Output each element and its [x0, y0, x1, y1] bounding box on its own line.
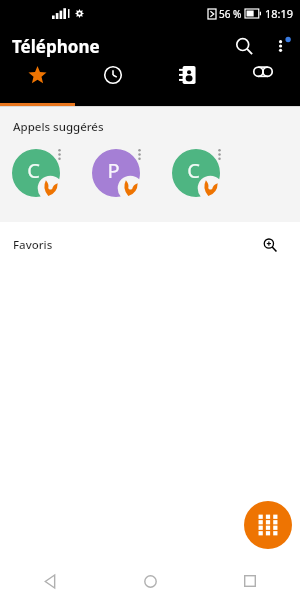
button[interactable]: Rechercher — [224, 26, 264, 66]
staticText: Favoris — [13, 237, 53, 253]
staticText: Téléphone — [12, 35, 100, 58]
button[interactable]: Appeler P — [88, 145, 152, 203]
button[interactable]: Options du contact — [132, 145, 146, 163]
button[interactable]: Messagerie vocale — [225, 66, 300, 77]
button[interactable]: Applications récentes — [200, 562, 300, 600]
button[interactable]: Favoris — [0, 66, 75, 85]
staticText: Appels suggérés — [13, 119, 104, 135]
staticText: P — [107, 157, 120, 184]
staticText: C — [27, 157, 40, 184]
button[interactable]: Options du contact — [212, 145, 226, 163]
button[interactable]: Plus d'options — [264, 28, 300, 64]
button[interactable]: Accueil — [100, 562, 200, 600]
staticText: C — [187, 157, 200, 184]
staticText: 56 % — [219, 7, 242, 21]
button[interactable]: Appeler C — [168, 145, 232, 203]
button[interactable]: Clavier de numérotation — [244, 501, 292, 549]
button[interactable]: Récents — [75, 66, 150, 84]
button[interactable]: Agrandir — [252, 227, 288, 263]
staticText: 18:19 — [265, 6, 294, 21]
button[interactable]: Appeler C — [8, 145, 72, 203]
button[interactable]: Retour — [0, 562, 100, 600]
button[interactable]: Options du contact — [52, 145, 66, 163]
button[interactable]: Contacts — [150, 66, 225, 84]
